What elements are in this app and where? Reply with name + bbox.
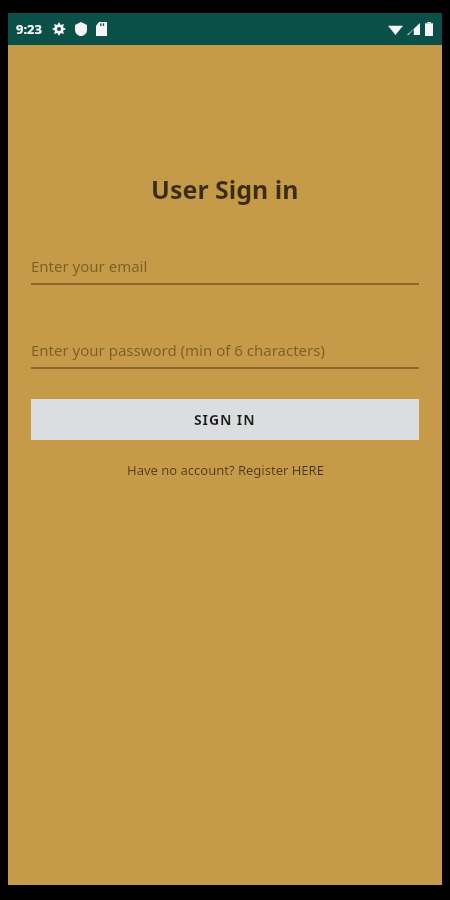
staticText: 9:23 [16,20,42,38]
staticText: Enter your email [31,256,148,276]
staticText: User Sign in [151,172,299,206]
button[interactable]: SIGN IN [31,399,419,440]
staticText: Have no account? Register HERE [127,461,324,479]
staticText: Enter your password (min of 6 characters… [31,340,325,360]
button[interactable]: Enter your password (min of 6 characters… [31,337,419,369]
button[interactable]: Have no account? Register HERE [31,461,419,479]
other: Settings [52,22,66,36]
other: Security [75,22,87,36]
button[interactable]: Enter your email [31,253,419,285]
staticText: SIGN IN [194,410,256,429]
other: Storage [96,22,107,36]
